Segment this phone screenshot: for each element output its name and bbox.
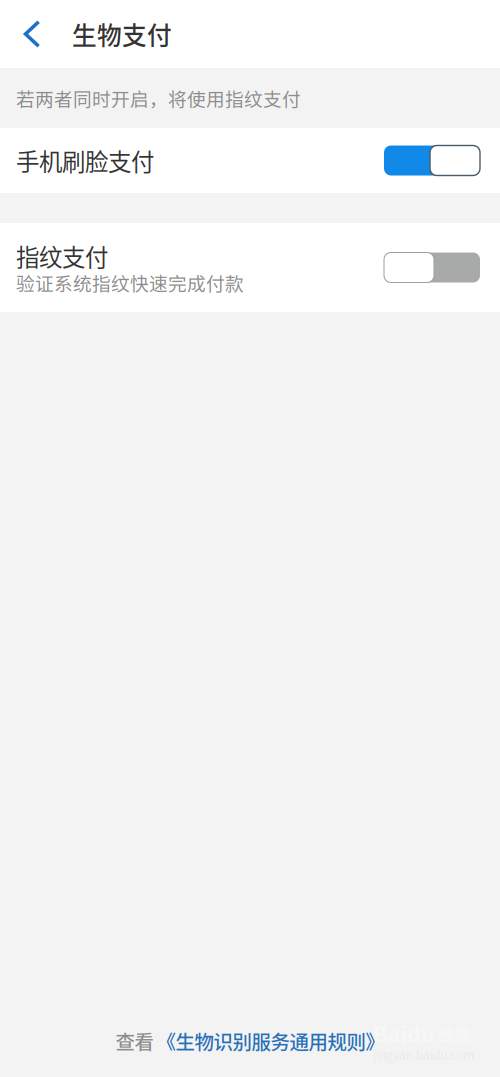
staticText: 生物支付 xyxy=(72,16,172,52)
staticText: 验证系统指纹快速完成付款 xyxy=(16,269,244,296)
staticText: 若两者同时开启，将使用指纹支付 xyxy=(16,84,301,111)
staticText: 指纹支付 xyxy=(16,239,108,273)
staticText: 《生物识别服务通用规则》 xyxy=(156,1027,384,1055)
button[interactable]: 返回 xyxy=(0,0,56,68)
staticText: 手机刷脸支付 xyxy=(16,143,154,177)
button[interactable]: 手机刷脸支付 xyxy=(0,128,500,193)
staticText: 查看 xyxy=(115,1027,153,1055)
button[interactable]: 指纹支付 xyxy=(0,223,500,312)
staticText: Baidu xyxy=(373,1018,435,1049)
button[interactable]: 查看 xyxy=(0,1019,500,1063)
